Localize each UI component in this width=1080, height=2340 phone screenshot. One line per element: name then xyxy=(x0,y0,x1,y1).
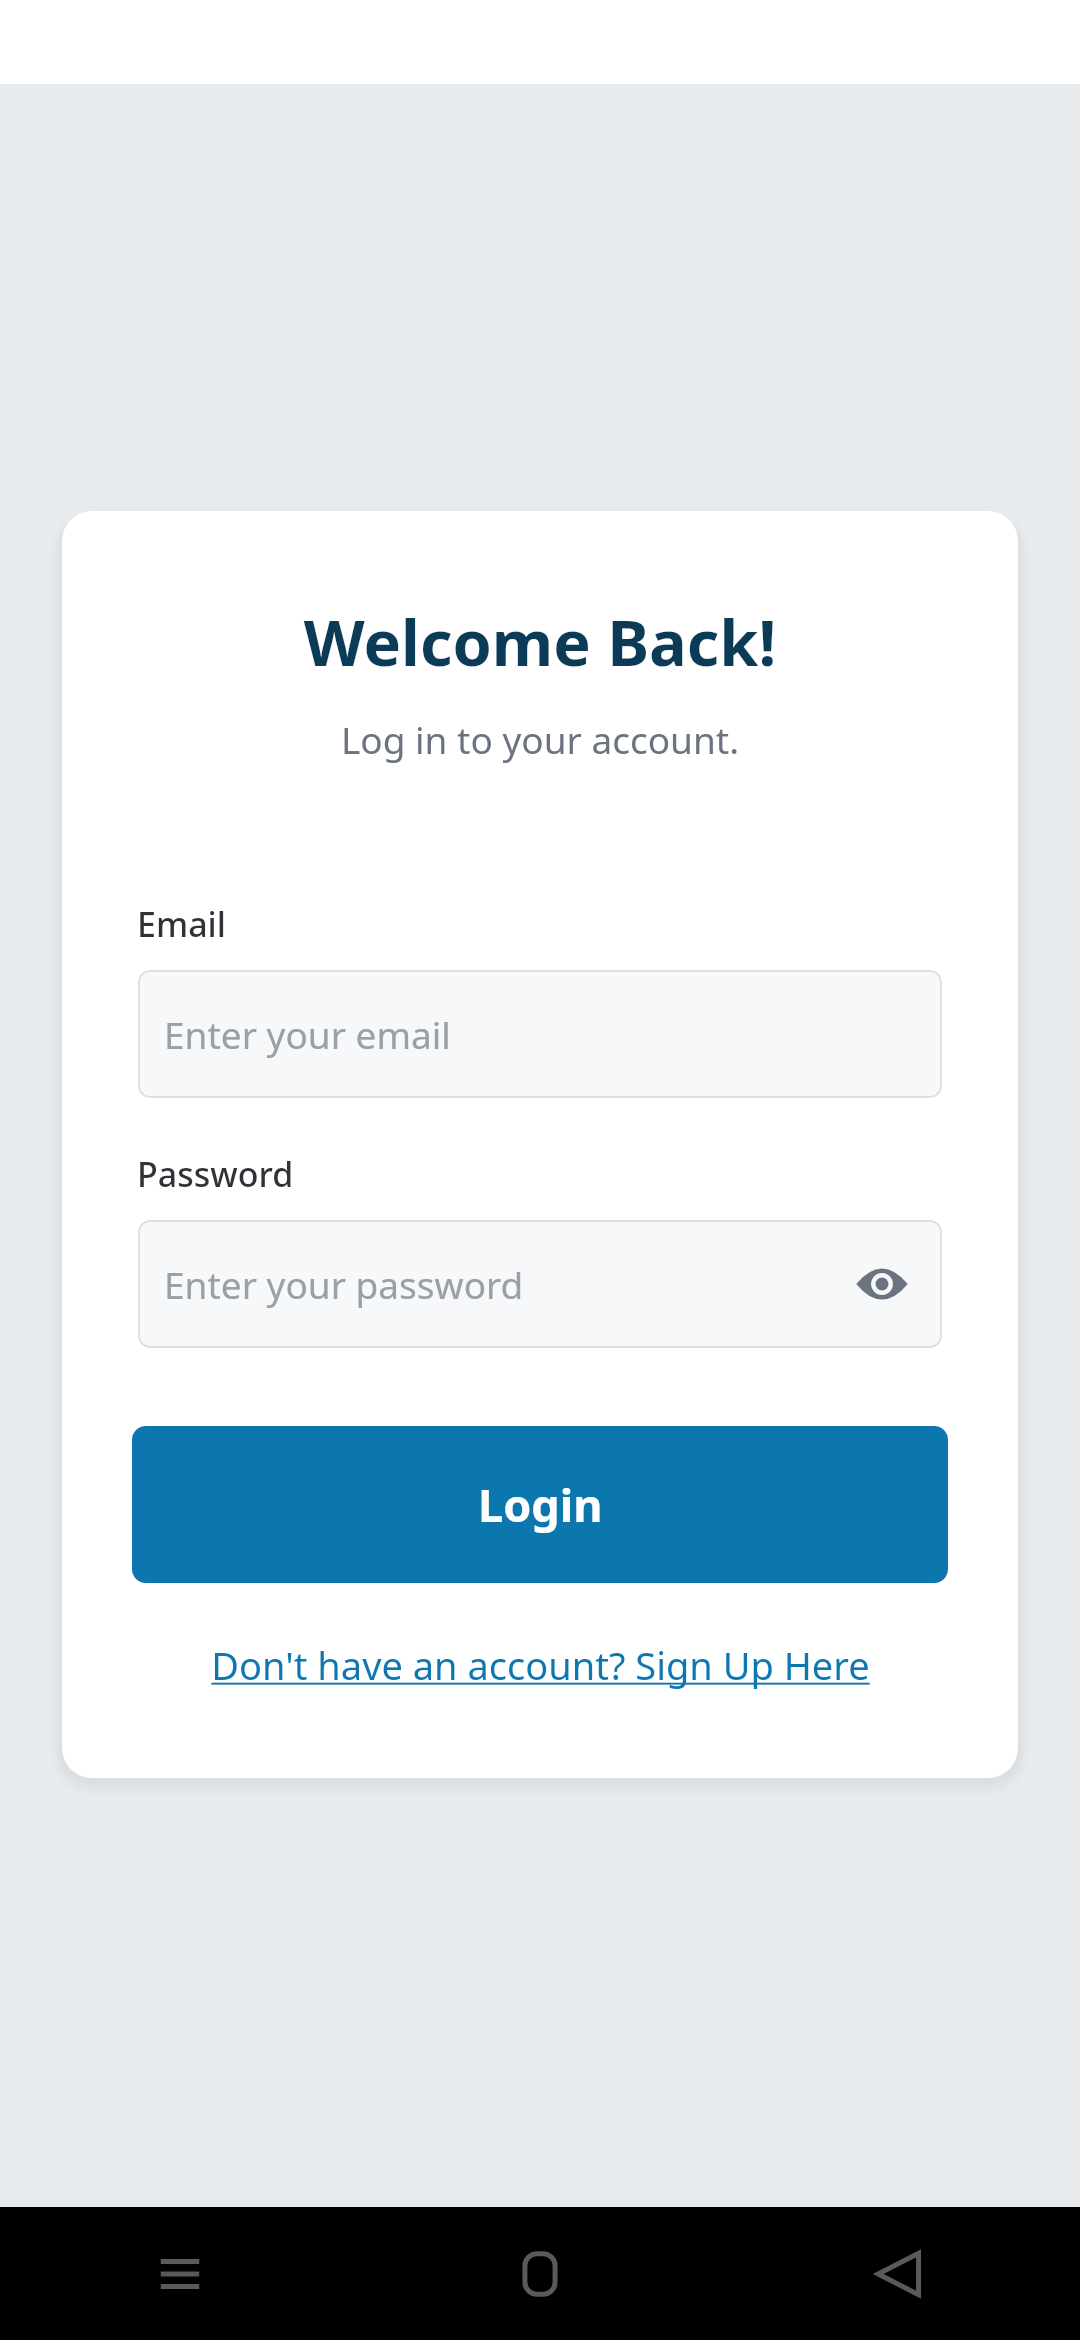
staticText: Password xyxy=(137,1151,294,1197)
staticText: Enter your password xyxy=(164,1259,524,1309)
staticText: Welcome Back! xyxy=(62,599,1018,685)
staticText: Login xyxy=(478,1474,603,1535)
staticText: Email xyxy=(137,901,226,947)
staticText: Log in to your account. xyxy=(62,714,1018,764)
button[interactable]: Enter your password xyxy=(138,1220,942,1348)
button[interactable]: Login xyxy=(132,1426,948,1583)
button[interactable]: Back xyxy=(720,2207,1080,2340)
button[interactable]: Show password xyxy=(852,1254,912,1314)
staticText: Enter your email xyxy=(164,1009,451,1059)
button[interactable]: Home xyxy=(360,2207,720,2340)
button[interactable]: Recent apps xyxy=(0,2207,360,2340)
button[interactable]: Enter your email xyxy=(138,970,942,1098)
button[interactable]: Don't have an account? Sign Up Here xyxy=(62,1639,1018,1691)
staticText: Don't have an account? Sign Up Here xyxy=(211,1639,870,1691)
